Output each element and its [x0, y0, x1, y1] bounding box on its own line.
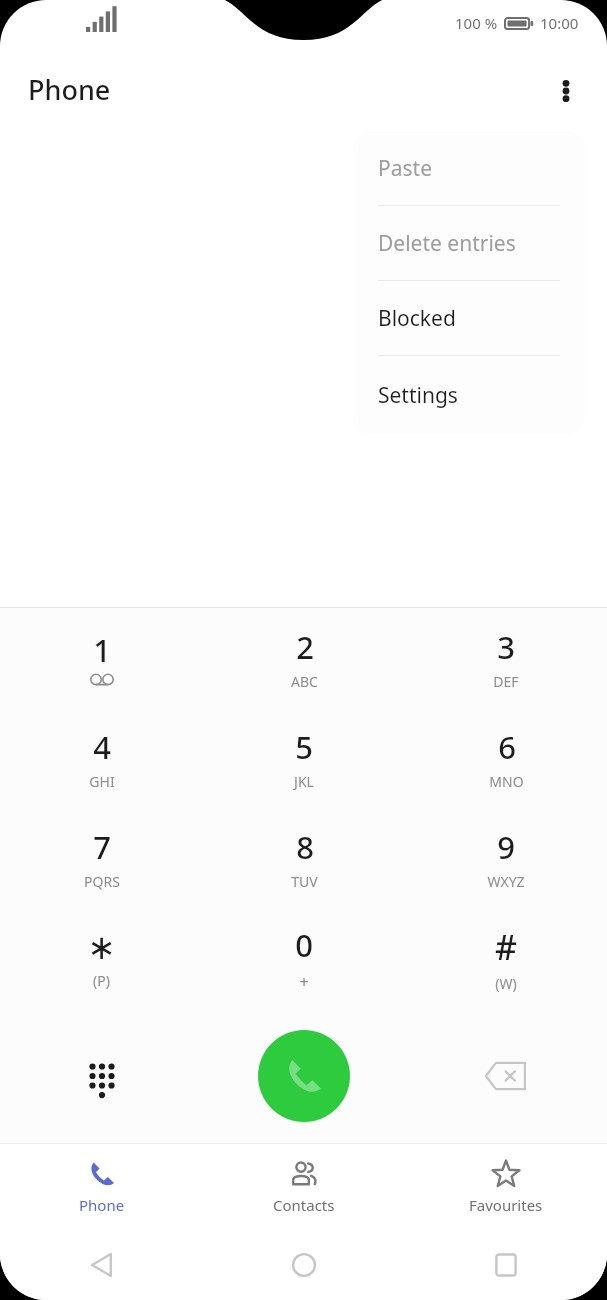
staticText: 100 % — [455, 13, 498, 33]
staticText: 7 — [93, 826, 111, 868]
button[interactable]: Delete entries — [353, 206, 585, 281]
staticText: Paste — [378, 154, 432, 183]
button[interactable]: Settings — [353, 356, 585, 435]
staticText: 4 — [93, 726, 111, 768]
staticText: (W) — [495, 974, 517, 993]
button[interactable]: Phone — [0, 1144, 203, 1230]
button[interactable]: Recents — [405, 1230, 607, 1300]
button[interactable]: Contacts — [203, 1144, 405, 1230]
button[interactable]: Blocked — [353, 281, 585, 356]
staticText: Phone — [28, 71, 111, 108]
button[interactable]: ∗ — [0, 908, 203, 1008]
button[interactable]: 7 — [0, 808, 203, 908]
staticText: # — [495, 924, 517, 970]
staticText: Contacts — [273, 1195, 335, 1215]
button[interactable]: 8 — [203, 808, 405, 908]
staticText: 1 — [93, 629, 111, 671]
staticText: GHI — [89, 772, 115, 791]
button[interactable]: 9 — [405, 808, 607, 908]
button[interactable]: 5 — [203, 708, 405, 808]
button[interactable]: 2 — [203, 608, 405, 708]
staticText: Delete entries — [378, 229, 516, 258]
staticText: 0 — [295, 924, 313, 966]
staticText: MNO — [489, 772, 524, 791]
staticText: Settings — [378, 381, 458, 410]
staticText: 5 — [295, 726, 313, 768]
button[interactable]: Call — [258, 1030, 350, 1122]
staticText: PQRS — [84, 872, 120, 891]
button[interactable]: More options — [539, 64, 593, 118]
button[interactable]: 3 — [405, 608, 607, 708]
button[interactable]: Backspace — [405, 1008, 607, 1143]
button[interactable]: Hide dialpad — [0, 1008, 203, 1143]
button[interactable]: Favourites — [405, 1144, 607, 1230]
staticText: 2 — [296, 626, 314, 668]
staticText: TUV — [291, 872, 318, 891]
staticText: Favourites — [469, 1195, 543, 1215]
staticText: 10:00 — [540, 13, 579, 33]
staticText: JKL — [294, 772, 314, 791]
staticText: Phone — [79, 1195, 125, 1215]
button[interactable]: 6 — [405, 708, 607, 808]
staticText: ABC — [291, 672, 318, 691]
staticText: WXYZ — [487, 872, 525, 891]
button[interactable]: 0 — [203, 908, 405, 1008]
staticText: ∗ — [87, 927, 116, 967]
staticText: 8 — [296, 826, 314, 868]
staticText: DEF — [493, 672, 519, 691]
staticText: + — [299, 970, 309, 993]
button[interactable]: Back — [0, 1230, 203, 1300]
button[interactable]: 4 — [0, 708, 203, 808]
staticText: Blocked — [378, 304, 456, 333]
staticText: 6 — [498, 726, 516, 768]
staticText: 3 — [497, 626, 515, 668]
button[interactable]: Home — [203, 1230, 405, 1300]
button[interactable]: 1 — [0, 608, 203, 708]
staticText: 9 — [497, 826, 515, 868]
button[interactable]: # — [405, 908, 607, 1008]
staticText: (P) — [93, 971, 110, 990]
button[interactable]: Paste — [353, 131, 585, 206]
